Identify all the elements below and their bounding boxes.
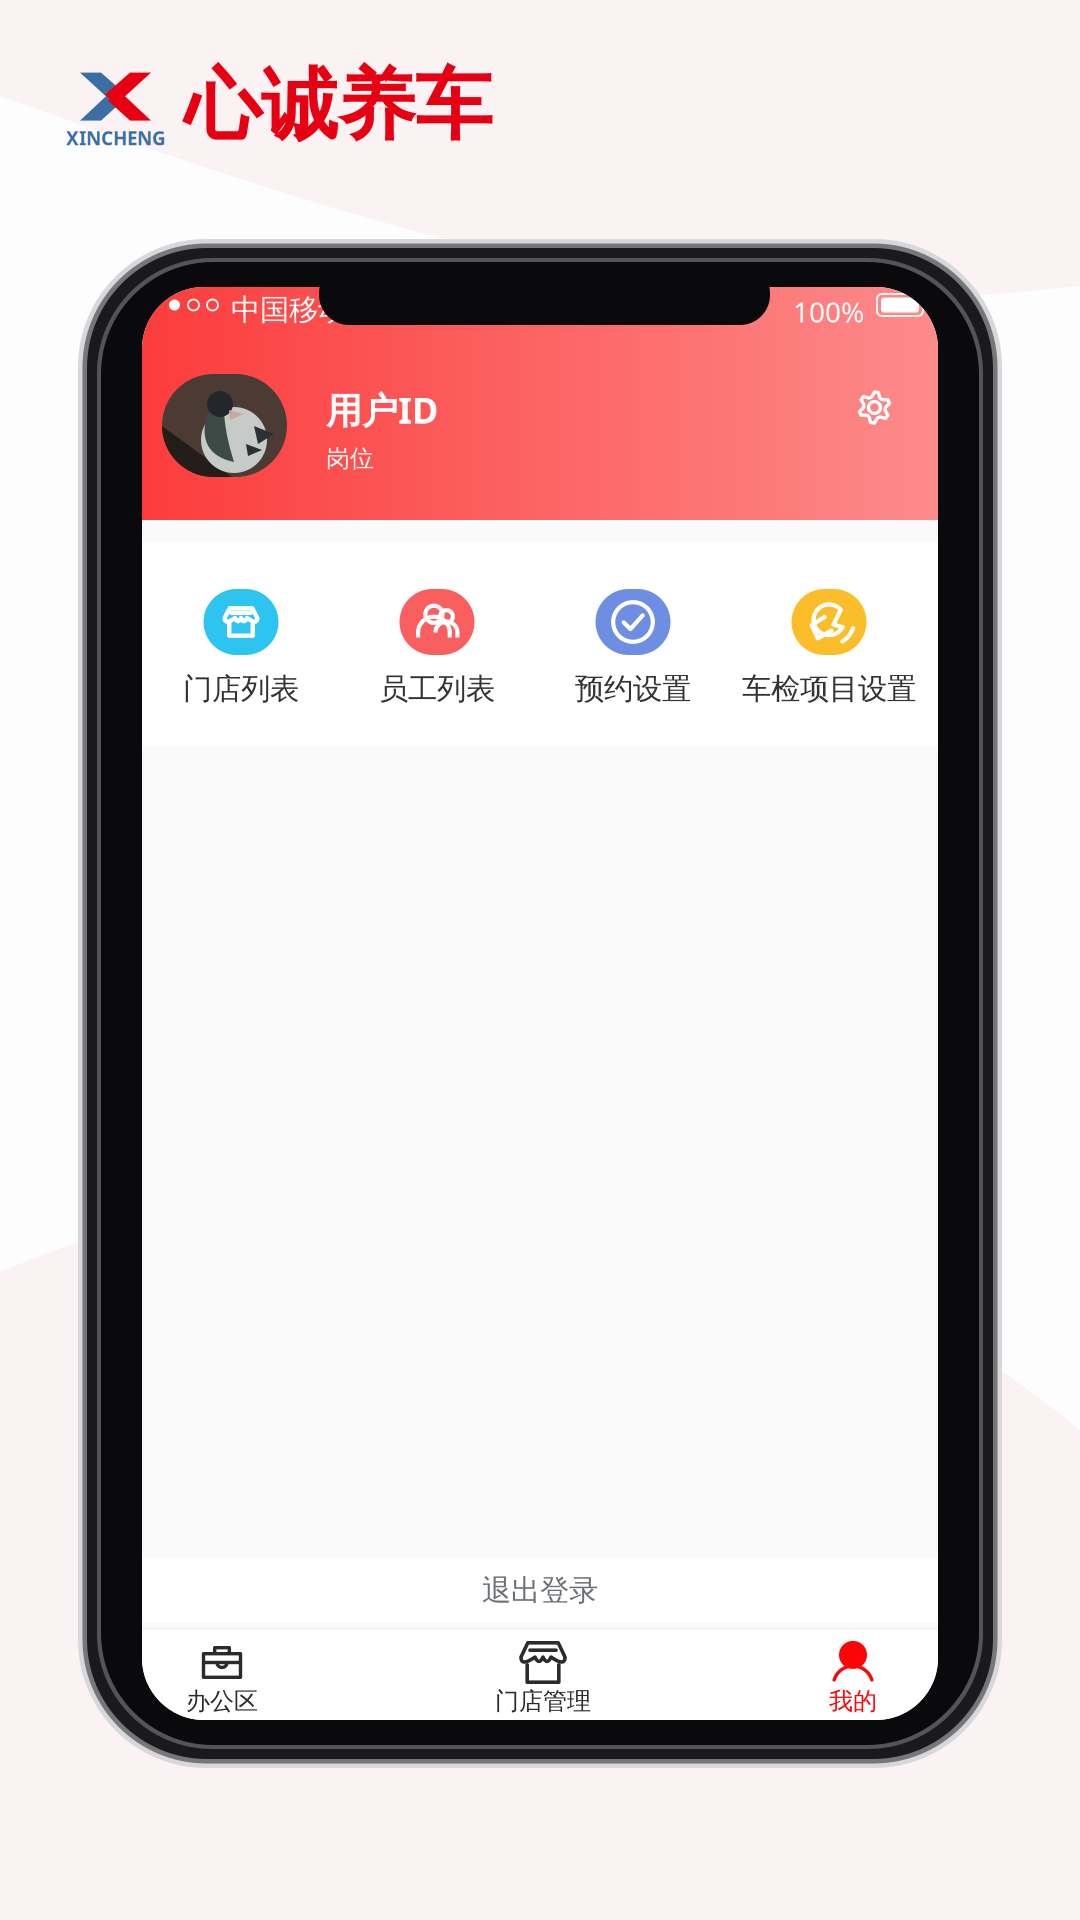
staticText: 中国移动 [231, 292, 347, 328]
staticText: 用户ID [326, 386, 438, 434]
staticText: 办公区 [186, 1686, 258, 1716]
button[interactable]: 车检项目设置 [731, 589, 927, 702]
staticText: 退出登录 [482, 1572, 598, 1608]
button[interactable]: 办公区 [142, 1629, 302, 1720]
button[interactable]: 员工列表 [339, 589, 535, 702]
button[interactable]: 退出登录 [142, 1558, 938, 1623]
staticText: 心诚养车 [184, 58, 492, 153]
staticText: 预约设置 [575, 671, 691, 707]
staticText: 100% [793, 293, 864, 330]
staticText: 员工列表 [379, 671, 495, 707]
staticText: 我的 [829, 1686, 877, 1716]
staticText: 门店列表 [183, 671, 299, 707]
staticText: 门店管理 [495, 1686, 591, 1716]
button[interactable]: 门店列表 [143, 589, 339, 702]
button[interactable]: Settings [842, 375, 907, 440]
button[interactable]: 预约设置 [535, 589, 731, 702]
staticText: XINCHENG [66, 126, 166, 150]
button[interactable]: 我的 [773, 1629, 933, 1720]
staticText: 岗位 [326, 444, 374, 473]
staticText: 车检项目设置 [742, 671, 916, 707]
button[interactable]: 门店管理 [463, 1629, 623, 1720]
